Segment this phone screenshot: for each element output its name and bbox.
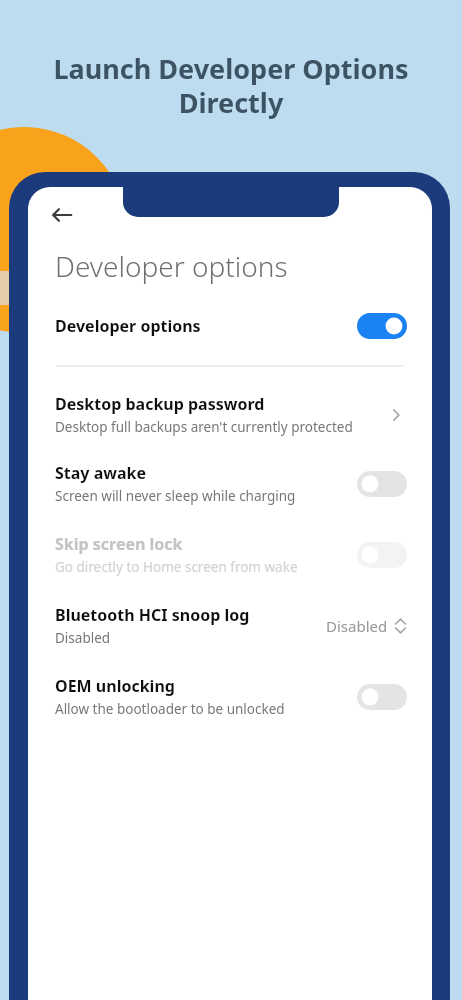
button[interactable]: Bluetooth HCI snoop log — [28, 600, 432, 651]
button[interactable]: Developer options — [28, 309, 432, 343]
staticText: Disabled — [55, 629, 111, 647]
staticText: Developer options — [55, 315, 201, 337]
staticText: Disabled — [326, 616, 388, 636]
staticText: Stay awake — [55, 462, 146, 484]
button[interactable]: Switch off — [357, 471, 407, 497]
staticText: Developer options — [55, 247, 288, 285]
button[interactable]: Switch off — [357, 684, 407, 710]
button[interactable]: Switch off — [357, 542, 407, 568]
button[interactable]: Skip screen lock — [28, 529, 432, 580]
staticText: Screen will never sleep while charging — [55, 487, 296, 505]
staticText: Skip screen lock — [55, 533, 183, 555]
staticText: Allow the bootloader to be unlocked — [55, 700, 285, 718]
button[interactable]: Back — [40, 193, 84, 237]
staticText: Launch Developer Options Directly — [16, 50, 446, 121]
staticText: Desktop full backups aren't currently pr… — [55, 418, 353, 436]
button[interactable]: Stay awake — [28, 458, 432, 509]
button[interactable]: Desktop backup password — [28, 389, 432, 440]
staticText: OEM unlocking — [55, 675, 175, 697]
button[interactable]: OEM unlocking — [28, 671, 432, 722]
staticText: Bluetooth HCI snoop log — [55, 604, 250, 626]
staticText: Go directly to Home screen from wake — [55, 558, 298, 576]
button[interactable]: Switch on — [357, 313, 407, 339]
staticText: Desktop backup password — [55, 393, 265, 415]
